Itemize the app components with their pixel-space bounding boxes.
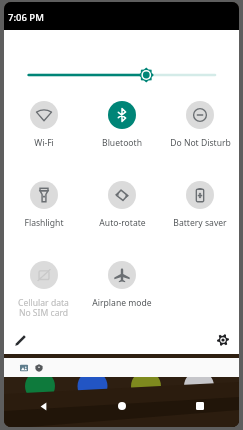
staticText: Airplane mode [92, 297, 152, 309]
button[interactable]: Cellular data No SIM card [4, 261, 83, 319]
staticText: Do Not Disturb [170, 137, 231, 149]
staticText: Bluetooth [102, 137, 142, 149]
button[interactable]: Do Not Disturb [161, 101, 239, 149]
button[interactable]: Airplane mode [83, 261, 161, 309]
button[interactable]: Wi-Fi [4, 101, 83, 149]
staticText: Cellular data No SIM card [18, 297, 69, 319]
button[interactable]: Edit tiles [9, 329, 31, 351]
button[interactable]: Settings [212, 329, 234, 351]
button[interactable]: Home [83, 385, 161, 427]
button[interactable]: Auto-rotate [83, 181, 161, 229]
staticText: Wi-Fi [34, 137, 54, 149]
button[interactable]: Back [4, 385, 83, 427]
button[interactable]: Battery saver [161, 181, 239, 229]
staticText: 7:06 PM [8, 11, 44, 24]
button[interactable]: Recent apps [161, 385, 239, 427]
staticText: Auto-rotate [99, 217, 146, 229]
staticText: Battery saver [173, 217, 227, 229]
staticText: Flashlight [24, 217, 64, 229]
button[interactable]: Bluetooth [83, 101, 161, 149]
button[interactable]: Flashlight [4, 181, 83, 229]
